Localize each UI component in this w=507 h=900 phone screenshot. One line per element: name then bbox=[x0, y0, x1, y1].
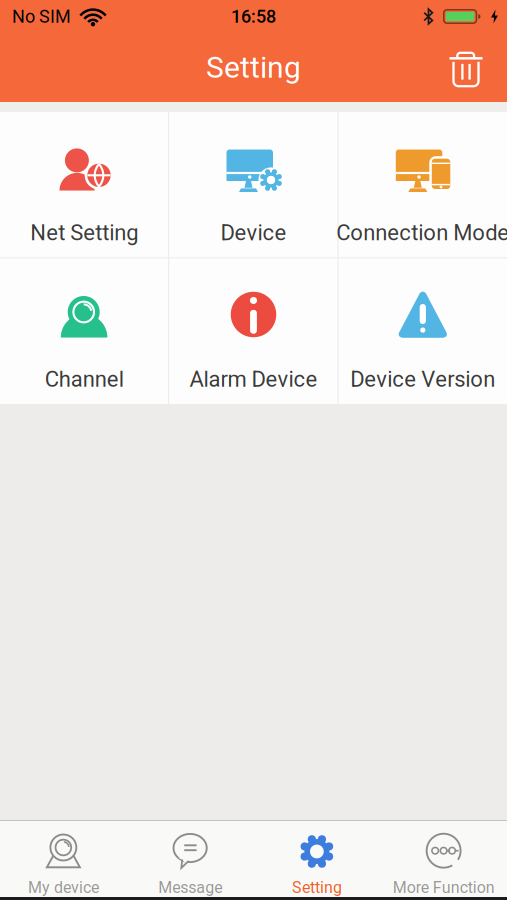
staticText: More Function bbox=[393, 878, 495, 897]
button[interactable]: Channel bbox=[0, 258, 168, 404]
button[interactable]: Connection Mode bbox=[339, 112, 507, 257]
button[interactable]: My device bbox=[0, 821, 127, 897]
button[interactable]: Alarm Device bbox=[169, 258, 338, 404]
staticText: Device Version bbox=[350, 366, 495, 392]
staticText: Setting bbox=[292, 878, 342, 897]
staticText: My device bbox=[28, 878, 99, 897]
staticText: Alarm Device bbox=[189, 366, 317, 392]
staticText: Setting bbox=[206, 50, 301, 85]
button[interactable]: Message bbox=[127, 821, 254, 897]
button[interactable]: Device Version bbox=[339, 258, 507, 404]
button[interactable]: Setting bbox=[253, 821, 380, 897]
button[interactable]: Net Setting bbox=[0, 112, 168, 257]
staticText: Net Setting bbox=[30, 220, 138, 245]
staticText: No SIM bbox=[12, 6, 71, 27]
staticText: 16:58 bbox=[231, 6, 276, 27]
staticText: Message bbox=[158, 878, 222, 897]
staticText: Device bbox=[220, 220, 286, 245]
button[interactable]: More Function bbox=[380, 821, 507, 897]
staticText: Channel bbox=[45, 366, 124, 392]
button[interactable]: Delete bbox=[449, 48, 507, 86]
button[interactable]: Device bbox=[169, 112, 338, 257]
staticText: Connection Mode bbox=[336, 220, 507, 245]
